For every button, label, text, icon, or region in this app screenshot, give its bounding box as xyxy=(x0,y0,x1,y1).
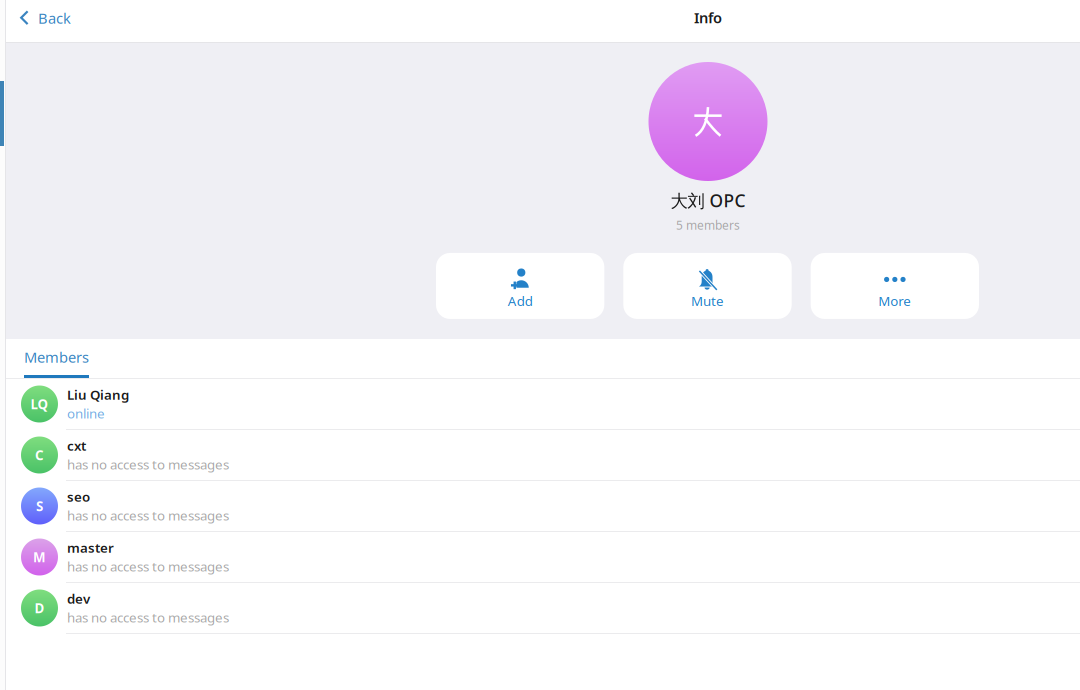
staticText: has no access to messages xyxy=(67,455,229,473)
staticText: C xyxy=(35,446,44,464)
button[interactable]: S xyxy=(0,481,1080,532)
staticText: has no access to messages xyxy=(67,557,229,575)
button[interactable]: Mute xyxy=(623,253,792,319)
staticText: More xyxy=(878,292,911,310)
staticText: Liu Qiang xyxy=(67,386,129,403)
staticText: Back xyxy=(38,8,71,28)
staticText: seo xyxy=(67,488,90,505)
button[interactable]: M xyxy=(0,532,1080,583)
staticText: online xyxy=(67,404,105,422)
button[interactable]: D xyxy=(0,583,1080,634)
staticText: LQ xyxy=(30,395,48,413)
button[interactable]: C xyxy=(0,430,1080,481)
button[interactable]: Members xyxy=(24,339,89,378)
staticText: 5 members xyxy=(676,217,740,233)
staticText: D xyxy=(34,599,44,617)
staticText: Info xyxy=(694,8,722,27)
button[interactable]: More xyxy=(811,253,979,319)
staticText: Add xyxy=(508,292,533,310)
staticText: cxt xyxy=(67,437,86,454)
staticText: S xyxy=(36,497,43,515)
staticText: has no access to messages xyxy=(67,506,229,524)
staticText: has no access to messages xyxy=(67,608,229,626)
button[interactable]: LQ xyxy=(0,379,1080,430)
staticText: Mute xyxy=(691,292,724,310)
button[interactable]: Back xyxy=(0,0,85,42)
button[interactable]: Add xyxy=(436,253,604,319)
staticText: dev xyxy=(67,590,90,607)
staticText: M xyxy=(33,548,46,566)
staticText: 大刘 OPC xyxy=(670,189,745,212)
staticText: master xyxy=(67,539,114,556)
staticText: Members xyxy=(24,347,89,367)
